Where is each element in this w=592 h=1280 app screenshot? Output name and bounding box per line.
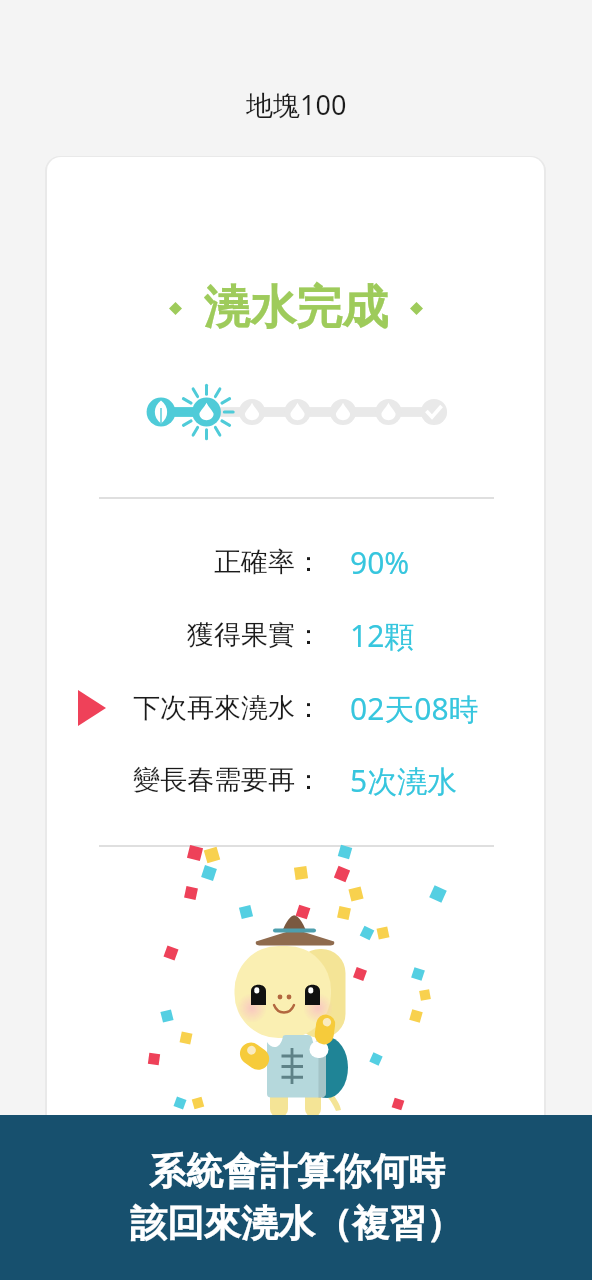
staticText: 該回來澆水（複習） (130, 1200, 463, 1247)
other: Next watering marker (78, 690, 106, 726)
staticText: 02天08時 (350, 688, 479, 729)
staticText: 12顆 (350, 615, 415, 656)
staticText: 獲得果實： (187, 618, 322, 652)
staticText: 正確率： (214, 545, 322, 579)
staticText: 下次再來澆水： (133, 691, 322, 725)
staticText: 地塊100 (246, 86, 347, 123)
button[interactable]: 系統會計算你何時 (0, 1115, 592, 1280)
staticText: 90% (350, 542, 410, 583)
staticText: 變長春需要再： (133, 763, 322, 797)
staticText: 澆水完成 (204, 279, 388, 337)
staticText: 5次澆水 (350, 760, 458, 801)
staticText: 系統會計算你何時 (149, 1148, 445, 1195)
